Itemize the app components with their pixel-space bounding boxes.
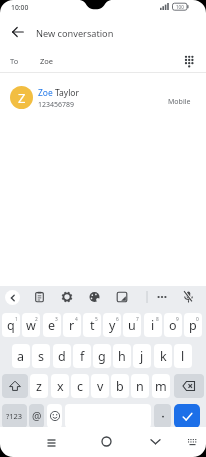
staticText: v bbox=[97, 378, 104, 395]
staticText: i bbox=[151, 317, 155, 334]
button[interactable] bbox=[2, 374, 28, 398]
staticText: z bbox=[36, 378, 42, 395]
staticText: j bbox=[140, 348, 144, 365]
button[interactable]: k bbox=[154, 344, 172, 368]
button[interactable] bbox=[184, 433, 201, 450]
button[interactable]: g bbox=[93, 344, 111, 368]
staticText: a bbox=[17, 348, 25, 365]
staticText: t bbox=[90, 317, 95, 334]
staticText: w bbox=[26, 317, 36, 334]
button[interactable]: y bbox=[103, 313, 121, 337]
staticText: p bbox=[189, 317, 197, 334]
staticText: n bbox=[136, 378, 144, 395]
staticText: 123456789 bbox=[38, 100, 75, 110]
button[interactable] bbox=[47, 404, 62, 428]
button[interactable]: t bbox=[83, 313, 101, 337]
staticText: m bbox=[155, 378, 167, 395]
staticText: o bbox=[169, 317, 177, 334]
button[interactable] bbox=[43, 433, 60, 450]
staticText: d bbox=[58, 348, 66, 365]
button[interactable]: o bbox=[164, 313, 182, 337]
button[interactable]: c bbox=[71, 374, 89, 398]
staticText: q bbox=[7, 317, 15, 334]
staticText: 1 bbox=[15, 316, 18, 323]
button[interactable] bbox=[180, 52, 199, 71]
staticText: 4 bbox=[75, 316, 78, 323]
button[interactable]: b bbox=[111, 374, 129, 398]
button[interactable]: w bbox=[22, 313, 40, 337]
staticText: 100 bbox=[176, 4, 184, 10]
staticText: s bbox=[38, 348, 44, 365]
staticText: Mobile bbox=[168, 97, 191, 107]
button[interactable]: r bbox=[63, 313, 81, 337]
button[interactable]: x bbox=[51, 374, 69, 398]
staticText: h bbox=[118, 348, 126, 365]
button[interactable]: f bbox=[73, 344, 91, 368]
button[interactable]: h bbox=[113, 344, 131, 368]
staticText: 7 bbox=[136, 316, 139, 323]
staticText: u bbox=[128, 317, 136, 334]
staticText: To bbox=[10, 56, 19, 66]
staticText: Z bbox=[18, 89, 26, 107]
button[interactable] bbox=[6, 25, 32, 51]
button[interactable] bbox=[174, 374, 204, 398]
button[interactable]: v bbox=[91, 374, 109, 398]
button[interactable]: ?123 bbox=[2, 404, 27, 428]
button[interactable]: d bbox=[53, 344, 71, 368]
staticText: 0 bbox=[196, 316, 199, 323]
staticText: 10:00 bbox=[11, 3, 29, 12]
button[interactable] bbox=[174, 404, 200, 428]
staticText: 2 bbox=[35, 316, 38, 323]
staticText: c bbox=[77, 378, 84, 395]
button[interactable]: n bbox=[131, 374, 149, 398]
button[interactable] bbox=[154, 404, 171, 428]
button[interactable]: Z bbox=[0, 78, 206, 116]
button[interactable]: i bbox=[144, 313, 162, 337]
staticText: New conversation bbox=[36, 27, 114, 40]
button[interactable]: j bbox=[133, 344, 151, 368]
button[interactable]: l bbox=[174, 344, 192, 368]
button[interactable]: m bbox=[152, 374, 170, 398]
button[interactable]: p bbox=[184, 313, 202, 337]
button[interactable] bbox=[98, 433, 115, 450]
button[interactable]: s bbox=[32, 344, 50, 368]
staticText: y bbox=[109, 317, 116, 334]
button[interactable]: z bbox=[30, 374, 48, 398]
button[interactable] bbox=[147, 433, 164, 450]
button[interactable]: u bbox=[123, 313, 141, 337]
staticText: ?123 bbox=[6, 411, 23, 421]
button[interactable]: @ bbox=[29, 404, 44, 428]
staticText: b bbox=[116, 378, 124, 395]
staticText: x bbox=[57, 378, 64, 395]
button[interactable] bbox=[5, 290, 20, 305]
button[interactable]: e bbox=[43, 313, 61, 337]
staticText: 5 bbox=[95, 316, 98, 323]
staticText: @ bbox=[32, 409, 42, 423]
button[interactable]: q bbox=[2, 313, 20, 337]
staticText: f bbox=[80, 348, 85, 365]
staticText: 6 bbox=[116, 316, 119, 323]
staticText: Zoe bbox=[40, 56, 54, 66]
staticText: r bbox=[69, 317, 75, 334]
staticText: k bbox=[160, 348, 167, 365]
staticText: 3 bbox=[55, 316, 58, 323]
staticText: 9 bbox=[176, 316, 179, 323]
button[interactable]: a bbox=[12, 344, 30, 368]
staticText: 8 bbox=[156, 316, 159, 323]
staticText: g bbox=[98, 348, 106, 365]
staticText: l bbox=[181, 348, 185, 365]
staticText: Zoe Taylor bbox=[38, 87, 80, 99]
staticText: e bbox=[48, 317, 56, 334]
